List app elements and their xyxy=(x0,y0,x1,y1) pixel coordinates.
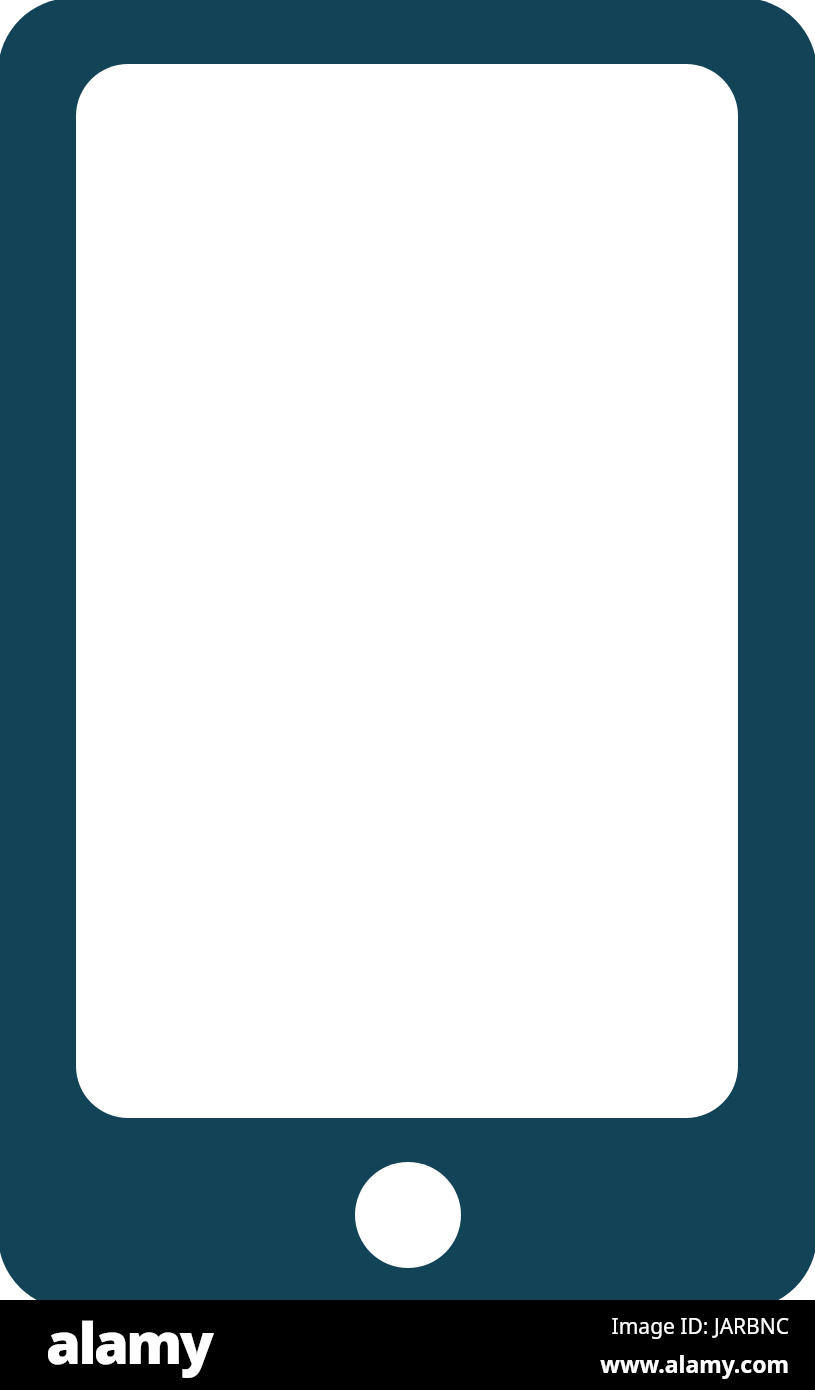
button[interactable]: alamy xyxy=(46,1304,212,1380)
button[interactable]: Smartphone device illustration xyxy=(0,0,815,1303)
button[interactable]: Image ID: JARBNC xyxy=(600,1312,789,1379)
staticText: Image ID: JARBNC xyxy=(611,1312,789,1341)
staticText: www.alamy.com xyxy=(600,1348,789,1379)
